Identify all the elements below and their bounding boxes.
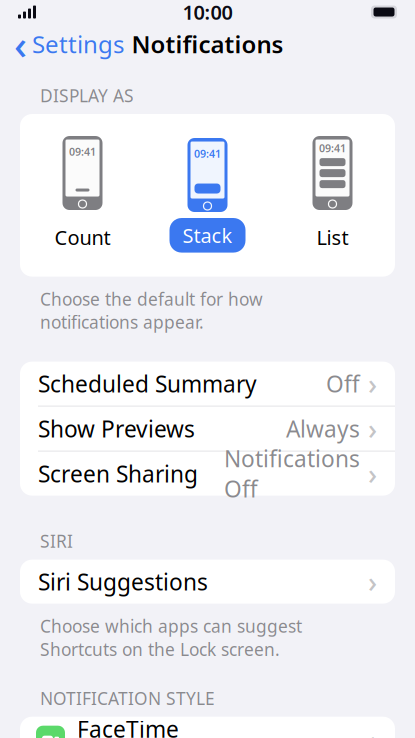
button[interactable]: Siri Suggestions <box>20 560 395 604</box>
staticText: Always <box>286 414 360 444</box>
staticText: NOTIFICATION STYLE <box>40 687 215 710</box>
staticText: Screen Sharing <box>38 459 198 489</box>
button[interactable]: FaceTime <box>20 717 395 738</box>
staticText: DISPLAY AS <box>40 84 134 107</box>
staticText: Notifications Off <box>224 443 360 504</box>
staticText: 09:41 <box>194 146 221 161</box>
staticText: Count <box>54 224 110 251</box>
staticText: 09:41 <box>69 144 96 159</box>
staticText: › <box>368 563 377 600</box>
staticText: Notifications <box>131 28 283 60</box>
staticText: › <box>368 410 377 447</box>
button[interactable]: ‹ <box>0 13 124 74</box>
button[interactable]: 09:41 <box>20 136 145 255</box>
staticText: › <box>368 365 377 402</box>
staticText: ‹ <box>14 17 27 70</box>
button[interactable]: 09:41 <box>145 138 270 253</box>
staticText: 10:00 <box>182 0 232 25</box>
button[interactable]: 09:41 <box>270 136 395 255</box>
staticText: FaceTime <box>77 714 179 738</box>
staticText: Show Previews <box>38 414 195 444</box>
button[interactable]: Scheduled Summary <box>20 362 395 406</box>
button[interactable]: Screen Sharing <box>20 452 395 496</box>
staticText: › <box>370 722 379 738</box>
staticText: Scheduled Summary <box>38 369 257 399</box>
staticText: Settings <box>32 28 124 60</box>
staticText: Choose which apps can suggest Shortcuts … <box>40 615 302 661</box>
staticText: › <box>368 455 377 492</box>
button[interactable]: Show Previews <box>20 407 395 451</box>
staticText: Stack <box>182 222 232 249</box>
staticText: Siri Suggestions <box>38 567 208 597</box>
staticText: SIRI <box>40 530 73 553</box>
staticText: List <box>316 224 348 251</box>
staticText: 09:41 <box>319 141 346 155</box>
staticText: Choose the default for how notifications… <box>40 288 263 334</box>
staticText: Off <box>326 369 360 399</box>
